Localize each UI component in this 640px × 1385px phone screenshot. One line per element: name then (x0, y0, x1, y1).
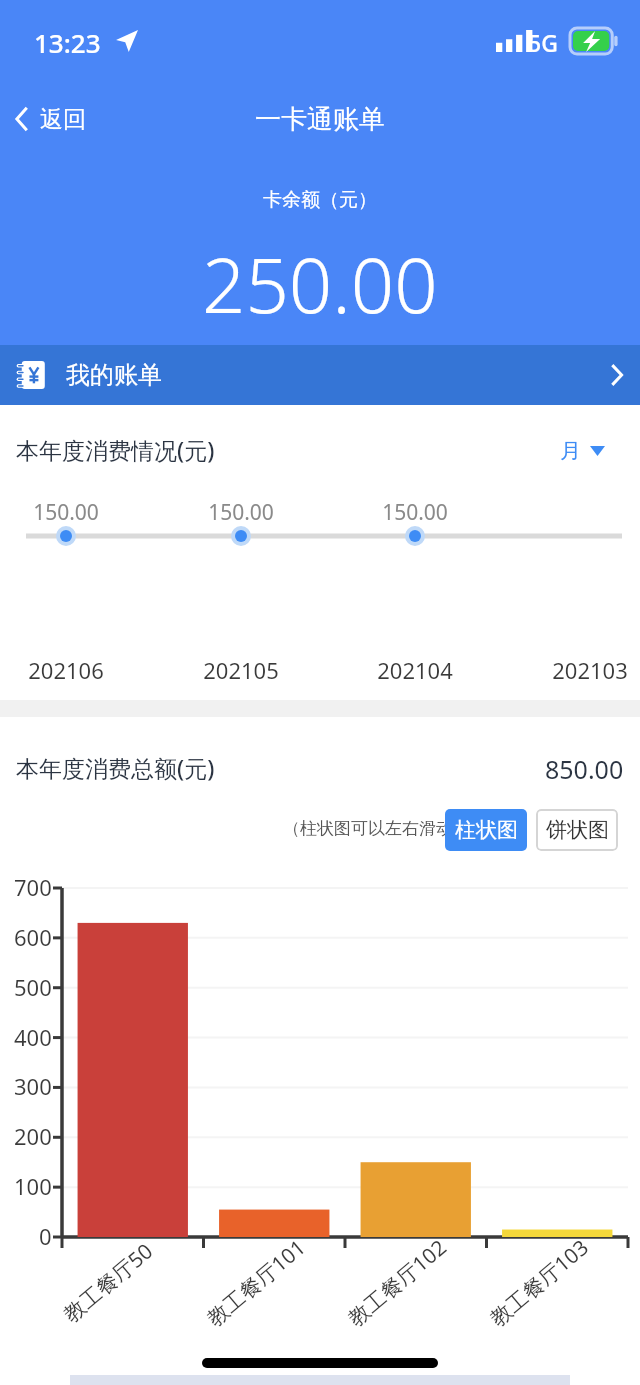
staticText: 600 (14, 922, 52, 952)
staticText: 202104 (377, 655, 453, 685)
staticText: 150.00 (382, 498, 448, 527)
staticText: 月 (560, 438, 581, 464)
button[interactable]: 饼状图 (536, 809, 618, 851)
staticText: 850.00 (545, 752, 624, 786)
staticText: 一卡通账单 (255, 103, 385, 136)
staticText: 本年度消费情况(元) (16, 434, 215, 465)
staticText: （柱状图可以左右滑动） (283, 818, 470, 839)
staticText: 5G (528, 27, 558, 58)
staticText: 250.00 (202, 232, 438, 336)
button[interactable]: 柱状图 (445, 809, 527, 851)
staticText: 教工餐厅102 (342, 1232, 453, 1332)
staticText: 卡余额（元） (263, 188, 377, 212)
staticText: 700 (14, 872, 52, 902)
staticText: 柱状图 (455, 817, 518, 843)
staticText: 100 (14, 1171, 52, 1201)
staticText: 202103 (552, 655, 628, 685)
staticText: 饼状图 (546, 817, 609, 843)
staticText: 本年度消费总额(元) (16, 752, 215, 783)
staticText: 返回 (40, 105, 86, 134)
staticText: 500 (14, 972, 52, 1002)
staticText: 13:23 (34, 25, 101, 60)
staticText: 教工餐厅50 (57, 1236, 159, 1329)
staticText: 我的账单 (66, 360, 162, 390)
staticText: 150.00 (33, 498, 99, 527)
staticText: 0 (39, 1221, 52, 1251)
staticText: 200 (14, 1121, 52, 1151)
staticText: 300 (14, 1071, 52, 1101)
staticText: 150.00 (208, 498, 274, 527)
button[interactable]: Back (0, 92, 100, 146)
staticText: 教工餐厅101 (201, 1232, 312, 1332)
button[interactable]: 月 (556, 434, 609, 468)
staticText: 202105 (203, 655, 279, 685)
staticText: 教工餐厅103 (484, 1232, 595, 1332)
button[interactable]: 我的账单 (0, 345, 640, 405)
staticText: 400 (14, 1022, 52, 1052)
staticText: 202106 (28, 655, 104, 685)
